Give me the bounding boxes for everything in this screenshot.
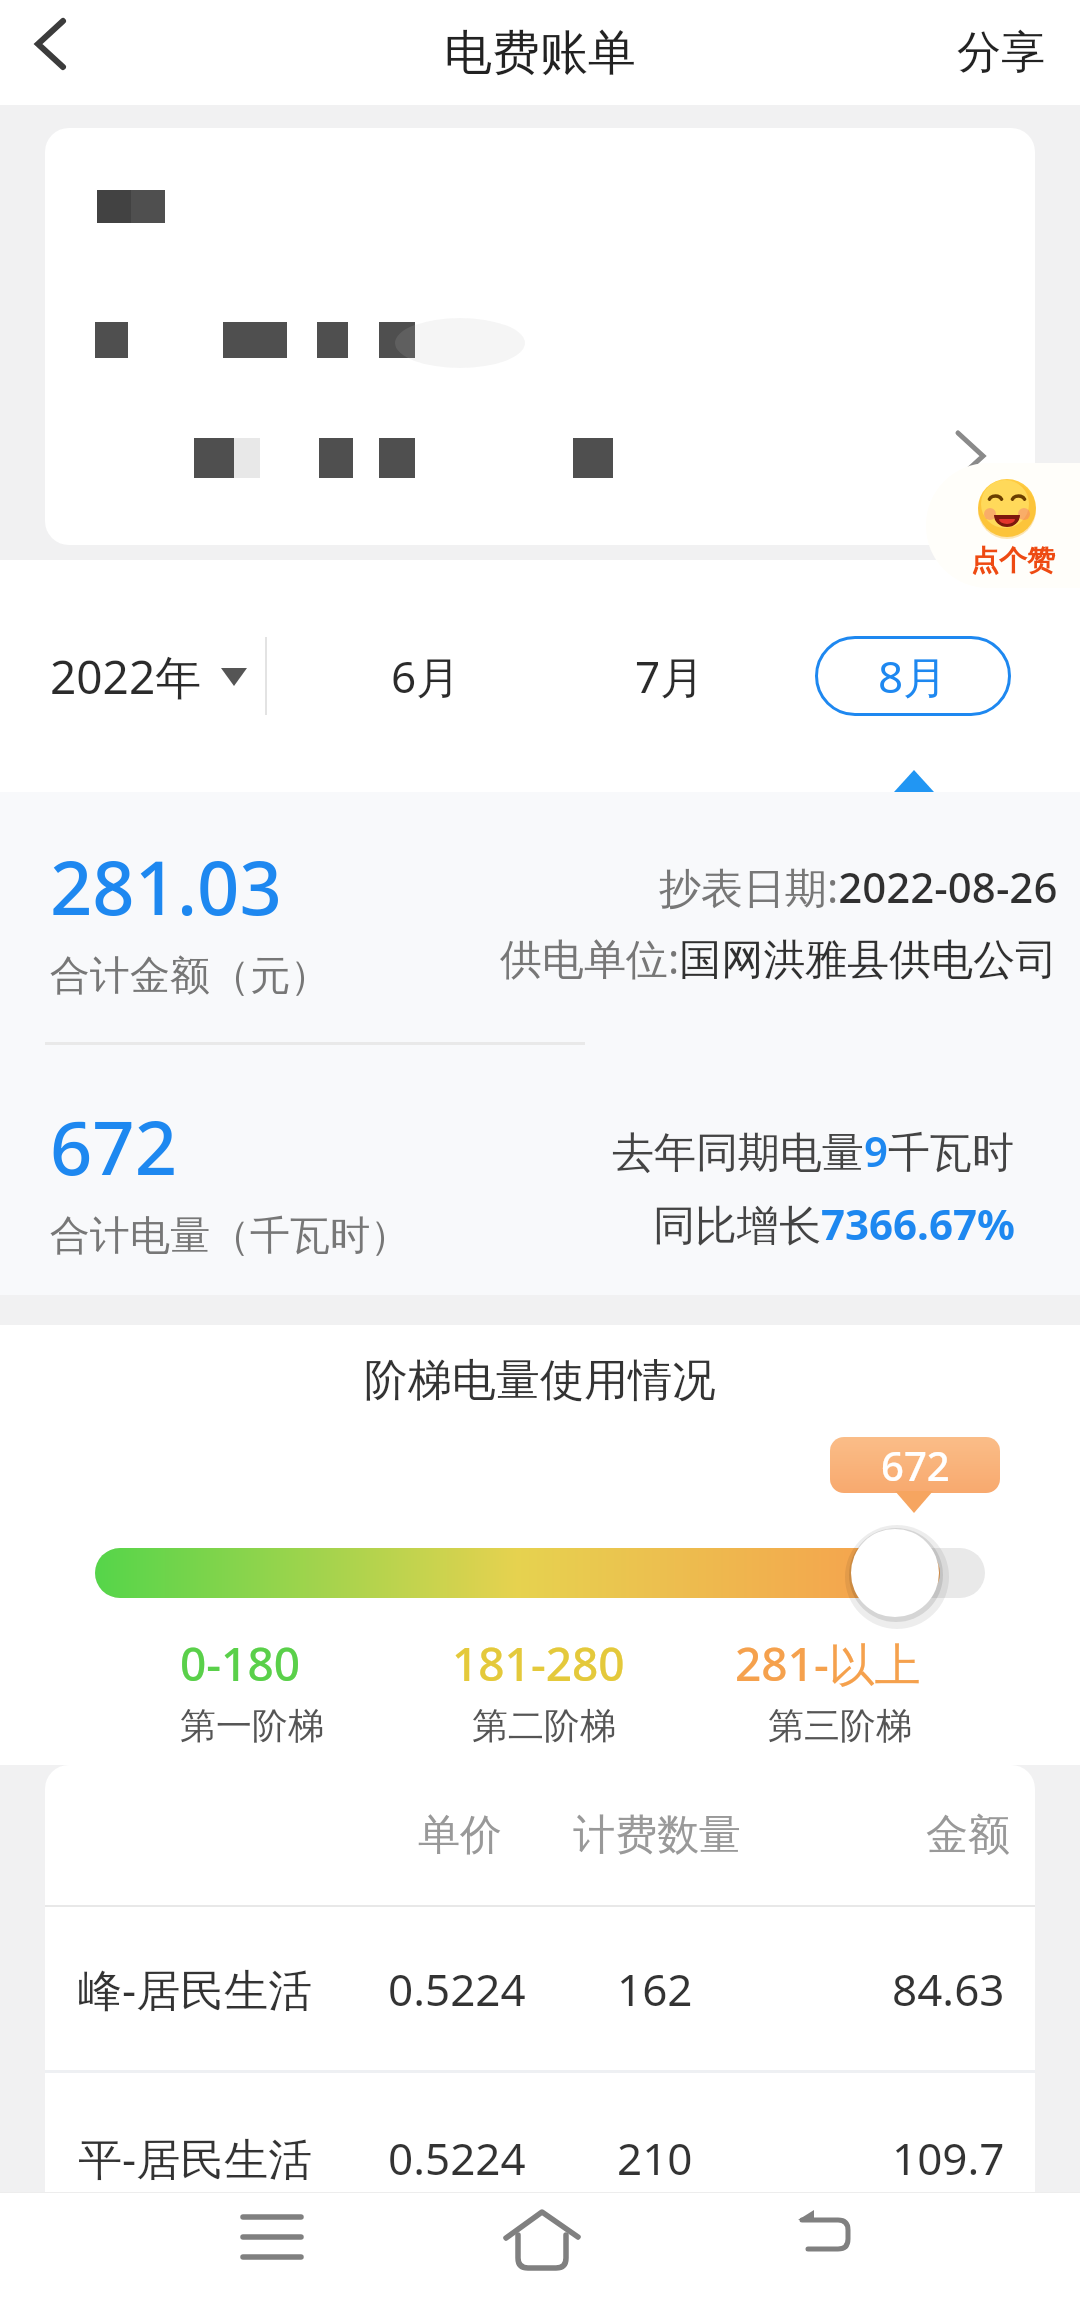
staticText: 2022年 [50, 645, 202, 708]
staticText: 金额 [926, 1809, 1010, 1862]
staticText: 抄表日期:2022-08-26 [659, 858, 1058, 915]
staticText: 8月 [878, 646, 948, 706]
staticText: 7月 [635, 646, 705, 706]
staticText: 672 [881, 1438, 950, 1492]
staticText: 281.03 [50, 836, 282, 937]
staticText: 计费数量 [573, 1809, 741, 1862]
staticText: 6月 [391, 646, 461, 706]
staticText: 109.7 [892, 2128, 1005, 2188]
staticText: 210 [617, 2128, 693, 2188]
staticText: 去年同期电量9千瓦时 [612, 1122, 1015, 1179]
staticText: 合计金额（元） [50, 950, 330, 1000]
staticText: 第二阶梯 [472, 1703, 616, 1748]
staticText: 单价 [418, 1809, 502, 1862]
staticText: 电费账单 [444, 23, 636, 83]
staticText: 0.5224 [388, 1959, 526, 2019]
staticText: 84.63 [892, 1959, 1005, 2019]
staticText: 平-居民生活 [78, 2128, 313, 2188]
staticText: 第一阶梯 [180, 1703, 324, 1748]
staticText: 分享 [957, 25, 1045, 80]
staticText: 第三阶梯 [768, 1703, 912, 1748]
staticText: 181-280 [452, 1632, 625, 1695]
staticText: 162 [617, 1959, 693, 2019]
staticText: 0-180 [180, 1632, 301, 1695]
staticText: 峰-居民生活 [78, 1959, 313, 2019]
staticText: 供电单位:国网洪雅县供电公司 [500, 929, 1058, 986]
staticText: 281-以上 [735, 1632, 921, 1695]
staticText: 同比增长7366.67% [653, 1195, 1015, 1252]
staticText: 合计电量（千瓦时） [50, 1210, 410, 1260]
staticText: 672 [50, 1096, 177, 1197]
staticText: 阶梯电量使用情况 [364, 1353, 716, 1408]
staticText: 0.5224 [388, 2128, 526, 2188]
staticText: 点个赞 [971, 543, 1055, 578]
